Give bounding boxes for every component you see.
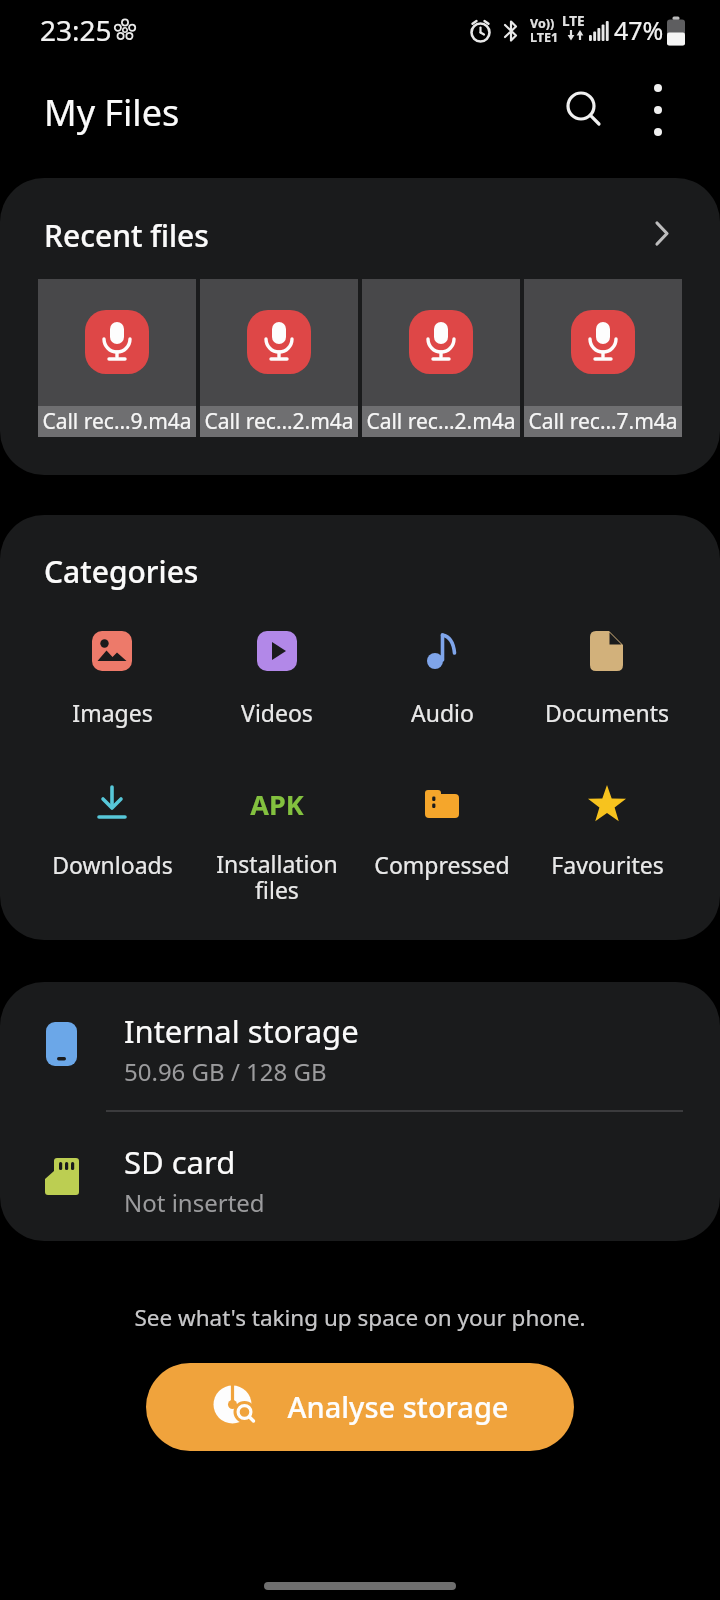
button[interactable] [0,990,720,1110]
button[interactable] [525,617,689,739]
staticText: SD card [124,1141,236,1183]
button[interactable]: Call rec…2.m4a [362,279,520,437]
staticText: Videos [241,697,313,728]
staticText: LTE [562,12,585,30]
staticText: Compressed [374,849,510,880]
staticText: LTE1 [530,29,559,46]
button[interactable]: Call rec…2.m4a [200,279,358,437]
staticText: Downloads [52,849,173,880]
staticText: Documents [545,697,669,728]
staticText: Categories [44,551,199,592]
staticText: Recent files [44,215,209,256]
button[interactable]: Call rec…9.m4a [38,279,196,437]
staticText: APK [250,786,304,823]
button[interactable] [632,84,684,136]
staticText: My Files [44,88,180,137]
button[interactable]: Call rec…7.m4a [524,279,682,437]
staticText: Call rec…9.m4a [42,407,192,436]
staticText: Call rec…2.m4a [366,407,516,436]
button[interactable] [195,770,359,920]
staticText: Vo)) [530,15,555,32]
button[interactable]: Recent files [0,196,720,272]
staticText: Audio [411,697,474,728]
staticText: Analyse storage [287,1387,509,1426]
staticText: See what's taking up space on your phone… [134,1302,586,1333]
staticText: Favourites [551,849,664,880]
button[interactable] [360,770,524,892]
staticText: Call rec…2.m4a [204,407,354,436]
button[interactable] [195,617,359,739]
staticText: Not inserted [124,1186,265,1219]
button[interactable] [360,617,524,739]
staticText: Internal storage [124,1010,359,1052]
staticText: 50.96 GB / 128 GB [124,1055,327,1088]
button[interactable] [525,770,689,892]
button[interactable] [30,617,194,739]
staticText: Installation files [216,848,338,906]
button[interactable] [557,82,609,134]
staticText: 23:25 [40,11,112,49]
button[interactable] [0,1112,720,1240]
staticText: Images [72,697,153,728]
button[interactable] [30,770,194,892]
button[interactable]: Analyse storage [146,1363,574,1451]
staticText: 47% [614,13,664,47]
staticText: Call rec…7.m4a [528,407,678,436]
